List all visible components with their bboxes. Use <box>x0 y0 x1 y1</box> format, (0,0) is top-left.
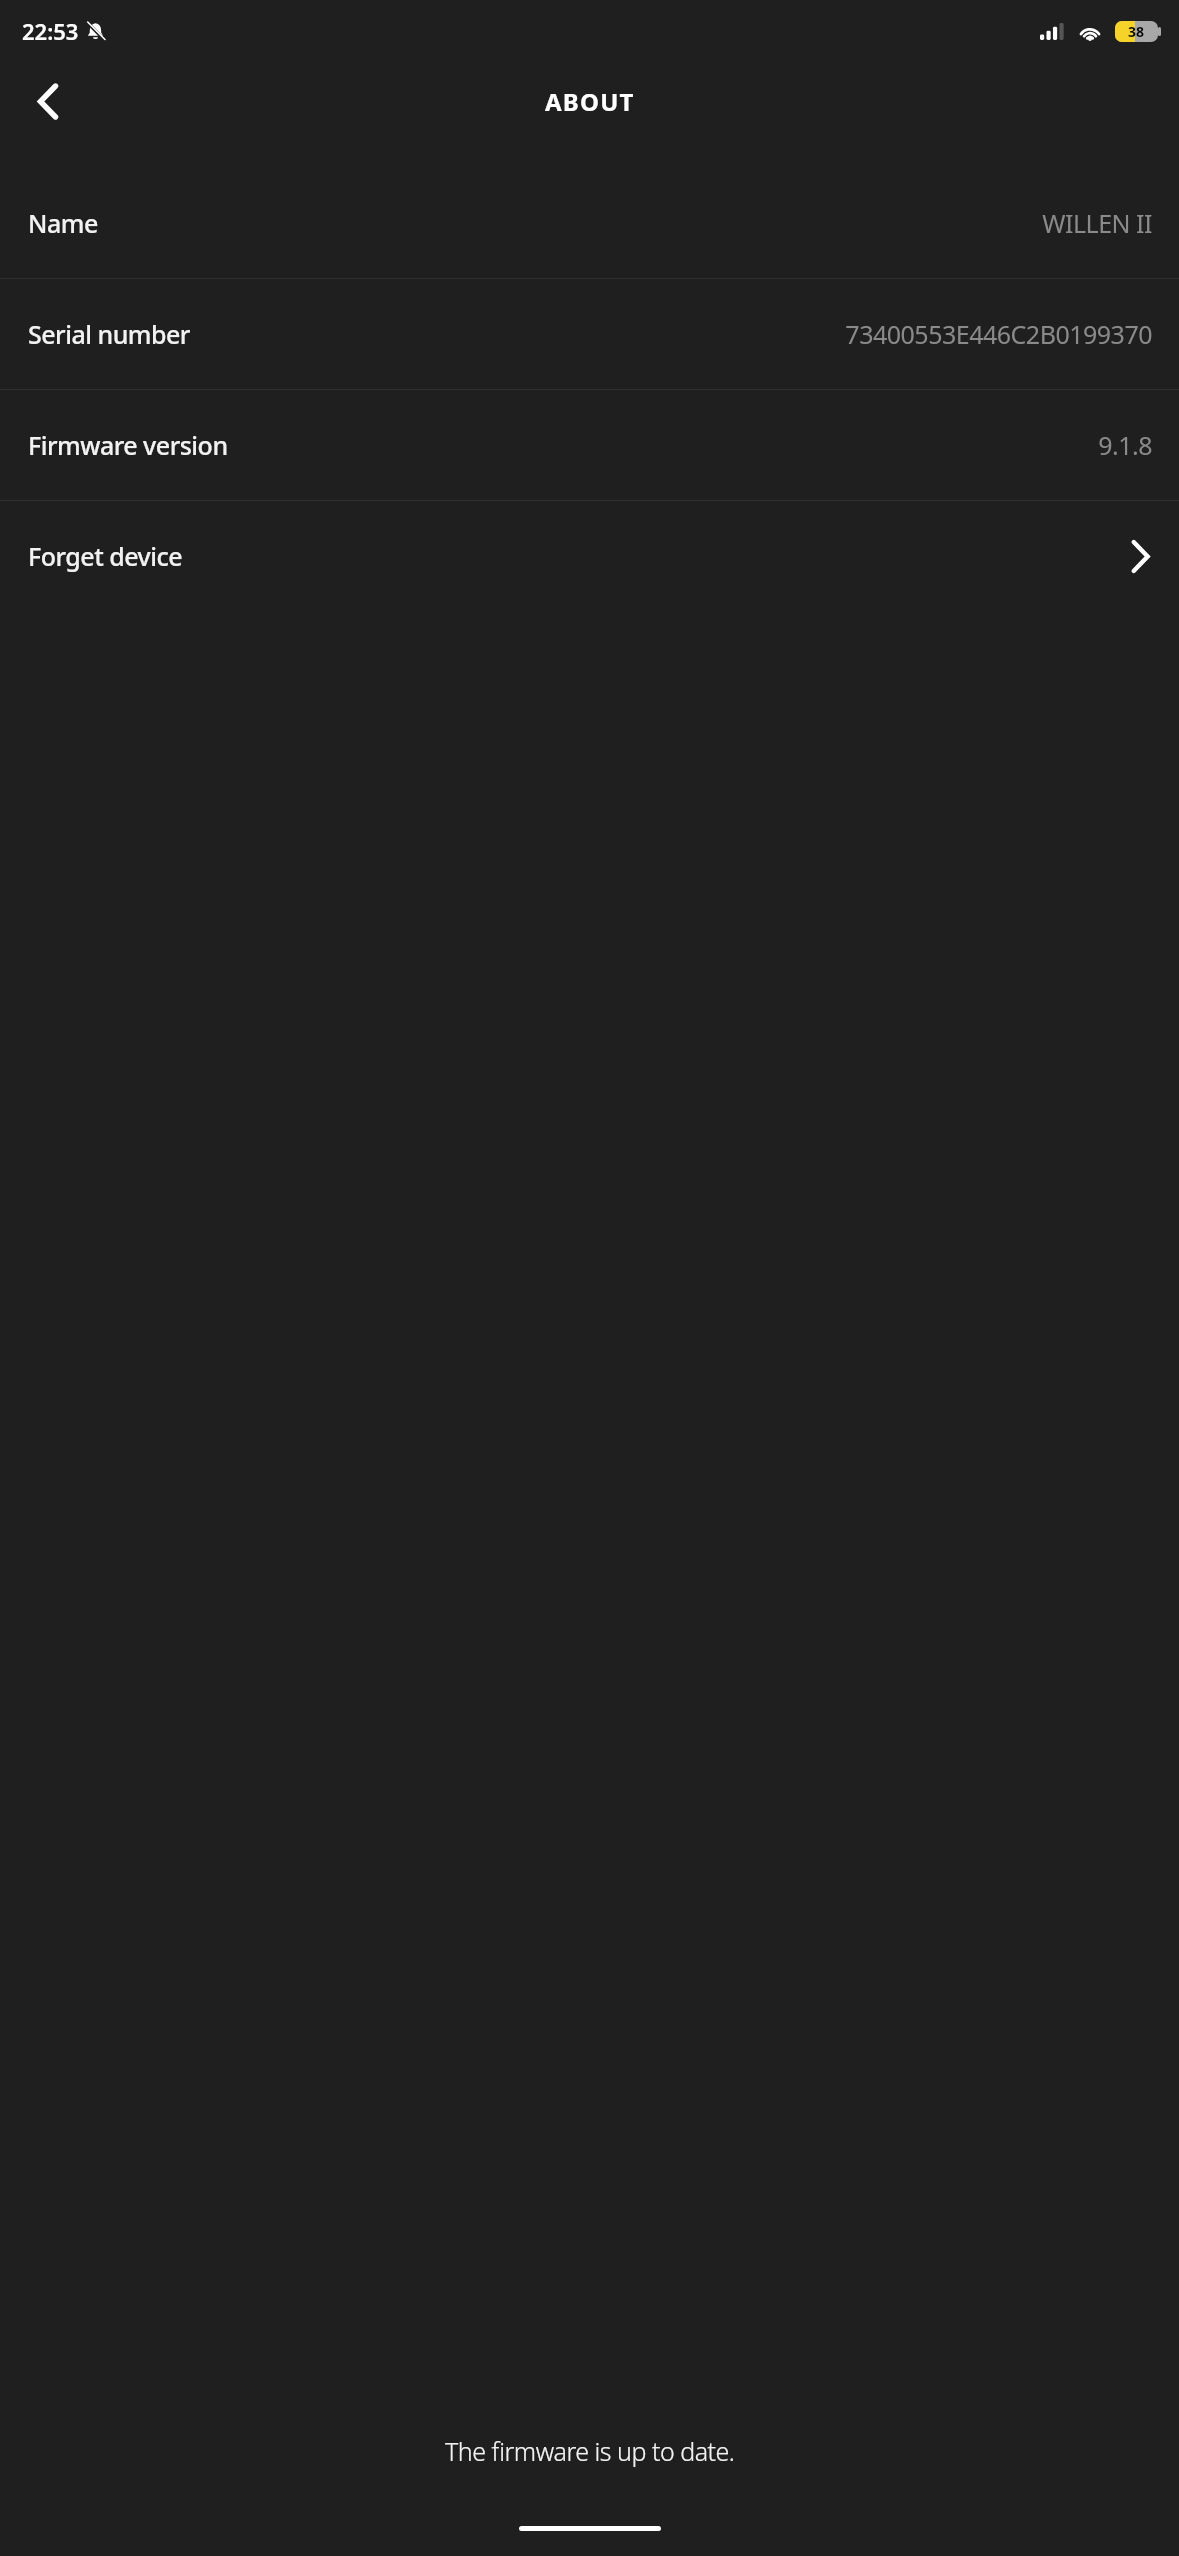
staticText: Name <box>28 206 98 240</box>
staticText: 73400553E446C2B0199370 <box>613 317 1152 351</box>
button[interactable]: Back <box>22 75 74 127</box>
staticText: The firmware is up to date. <box>445 2434 735 2468</box>
staticText: 22:53 <box>22 16 79 46</box>
staticText: Forget device <box>28 539 183 573</box>
staticText: ABOUT <box>545 85 635 118</box>
staticText: WILLEN II <box>625 206 1152 240</box>
button[interactable]: Firmware version <box>0 390 1179 500</box>
staticText: 38 <box>1128 22 1145 41</box>
staticText: Firmware version <box>28 428 228 462</box>
staticText: 9.1.8 <box>690 428 1152 462</box>
button[interactable]: Serial number <box>0 279 1179 389</box>
button[interactable]: Name <box>0 168 1179 278</box>
staticText: Serial number <box>28 317 190 351</box>
button[interactable]: Forget device <box>0 501 1179 611</box>
